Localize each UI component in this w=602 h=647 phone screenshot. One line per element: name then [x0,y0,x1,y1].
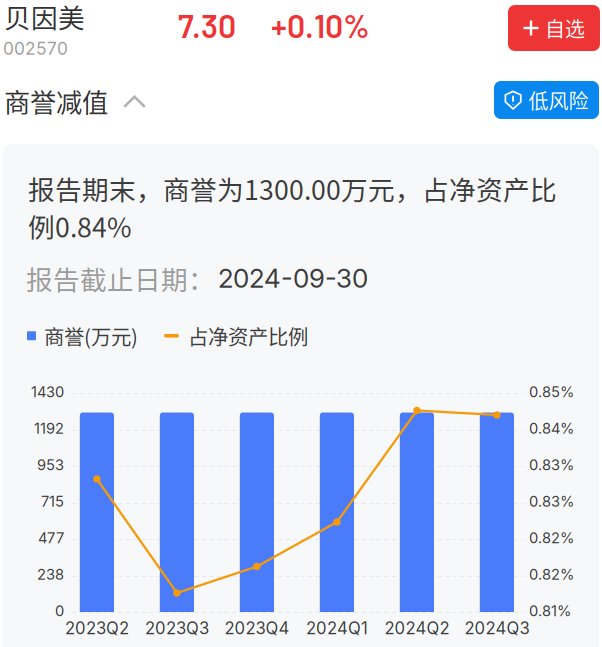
staticText: 0.83% [529,456,574,474]
staticText: 商誉减值 [4,82,108,120]
staticText: 0.81% [529,602,571,620]
staticText: 报告期末，商誉为1300.00万元，占净资产比例0.84% [28,169,557,245]
staticText: 002570 [3,38,68,59]
button[interactable]: 自选 [508,5,600,51]
staticText: 占净资产比例 [188,321,308,350]
staticText: 0.82% [529,529,574,547]
staticText: 2024Q3 [464,618,529,638]
staticText: 1430 [31,383,64,401]
staticText: 2023Q3 [145,618,209,638]
staticText: 0 [55,602,64,620]
staticText: 0.82% [529,565,574,583]
staticText: 7.30 [178,6,236,44]
staticText: 2024-09-30 [218,263,368,294]
staticText: 477 [38,529,64,547]
staticText: 报告截止日期： [26,259,215,298]
staticText: 2023Q2 [65,618,129,638]
staticText: 238 [37,565,64,583]
staticText: 0.84% [529,419,574,437]
staticText: 0.83% [529,492,574,510]
staticText: 低风险 [528,85,588,114]
button[interactable]: 低风险 [494,81,599,119]
staticText: 953 [37,456,64,474]
staticText: 2023Q4 [224,618,289,638]
staticText: 2024Q1 [306,618,368,638]
staticText: 自选 [545,13,585,42]
button[interactable]: 商誉减值 [4,82,146,120]
staticText: 商誉(万元) [44,321,138,350]
staticText: 715 [41,492,64,510]
staticText: 贝因美 [4,0,85,36]
staticText: +0.10% [271,6,370,44]
staticText: 2024Q2 [384,618,449,638]
staticText: 0.85% [529,383,574,401]
staticText: 1192 [34,419,64,437]
